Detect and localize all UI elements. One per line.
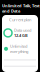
staticText: 12.4 GB xyxy=(14,33,28,38)
staticText: Data used xyxy=(14,28,31,33)
staticText: Unlimited everything xyxy=(10,43,28,54)
staticText: Current plan xyxy=(9,17,31,22)
staticText: Unlimited Talk, Text xyxy=(2,3,40,8)
staticText: and Data xyxy=(2,8,20,14)
